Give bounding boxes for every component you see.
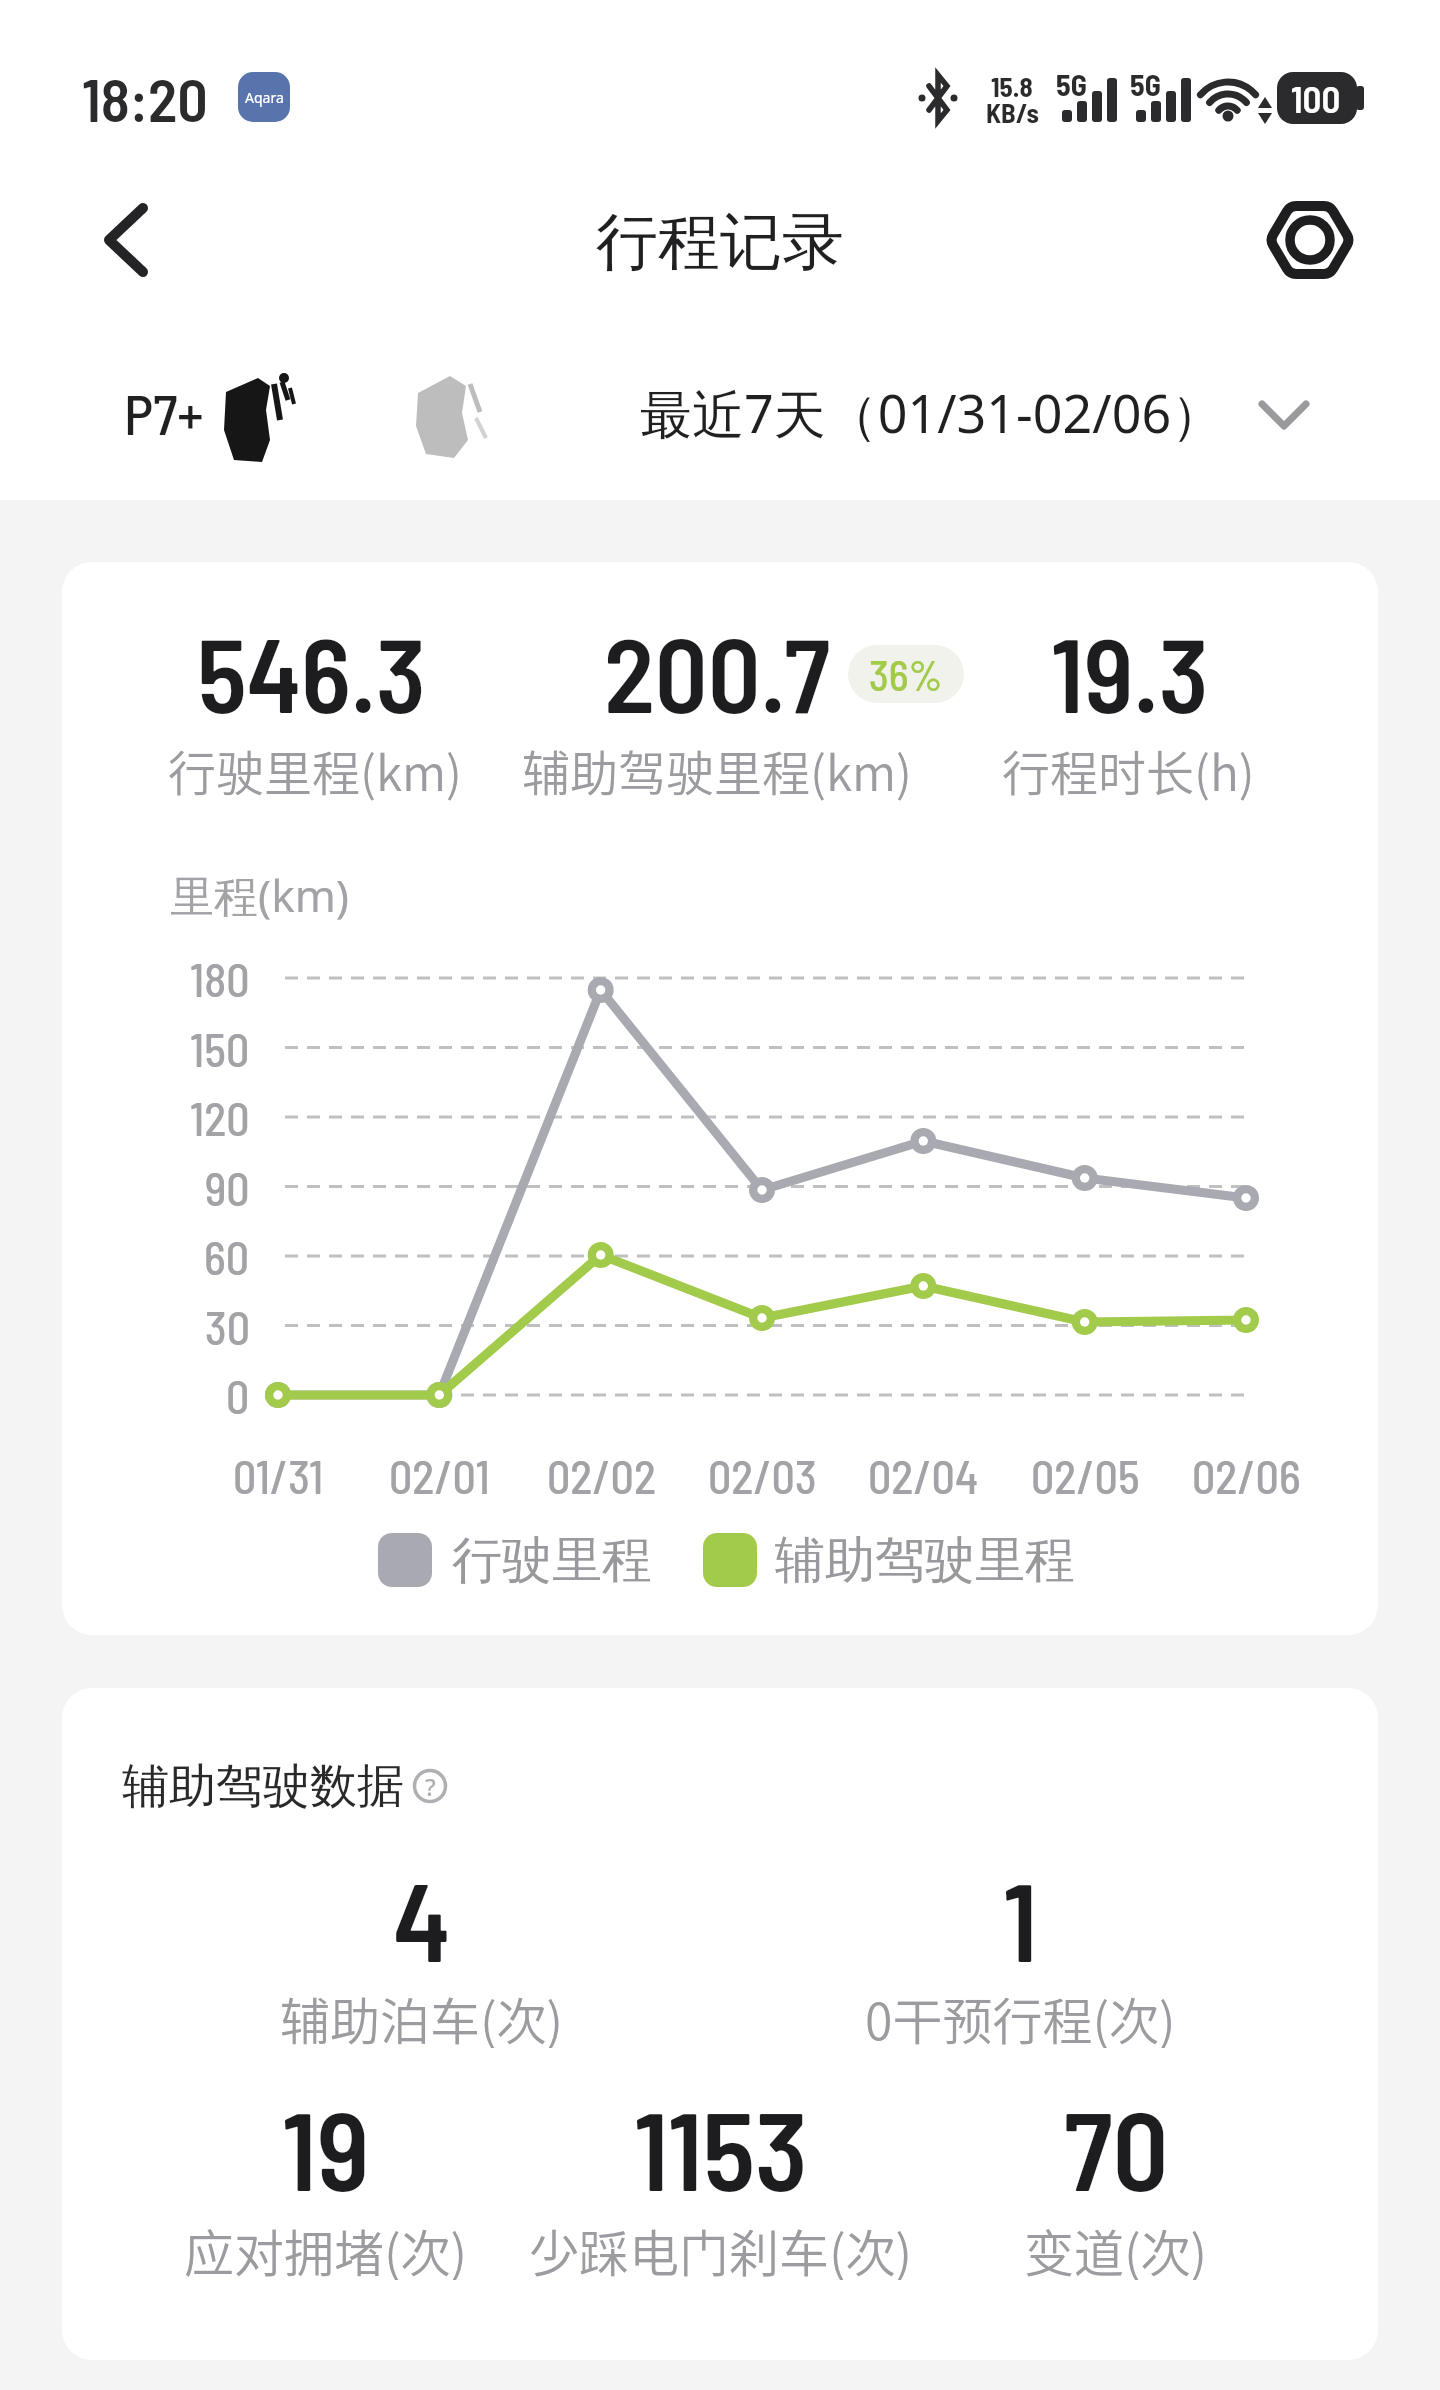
staticText: 里程(km) [170, 865, 350, 925]
staticText: KB/s [986, 96, 1039, 128]
staticText: 02/05 [1031, 1448, 1140, 1503]
staticText: 19.3 [1051, 609, 1209, 734]
staticText: 120 [190, 1090, 250, 1145]
staticText: 行程时长(h) [1002, 735, 1255, 805]
staticText: 60 [204, 1229, 250, 1284]
staticText: 0干预行程(次) [865, 1982, 1176, 2048]
staticText: 02/06 [1192, 1448, 1301, 1503]
staticText: 行驶里程 [452, 1529, 652, 1592]
button[interactable]: P7+ [0, 365, 1440, 465]
staticText: 行驶里程(km) [168, 735, 462, 805]
staticText: 18:20 [82, 62, 208, 132]
staticText: P7+ [124, 379, 204, 446]
staticText: 辅助驾驶数据 [122, 1757, 404, 1816]
staticText: 200.7 [604, 609, 830, 734]
staticText: 30 [205, 1299, 250, 1354]
staticText: 15.8 [991, 70, 1033, 102]
staticText: 最近7天（01/31-02/06） [640, 377, 1224, 447]
staticText: 辅助驾驶里程(km) [522, 735, 912, 805]
staticText: 少踩电门刹车(次) [529, 2214, 913, 2280]
staticText: 100 [1291, 76, 1341, 120]
staticText: 5G [1130, 66, 1161, 102]
staticText: 150 [190, 1021, 250, 1076]
staticText: 02/03 [708, 1448, 817, 1503]
staticText: 02/04 [868, 1448, 979, 1503]
staticText: ? [425, 1770, 436, 1803]
staticText: 02/02 [547, 1448, 656, 1503]
staticText: 辅助驾驶里程 [775, 1529, 1075, 1592]
staticText: 4 [393, 1852, 451, 1982]
staticText: 36% [869, 649, 943, 699]
staticText: 应对拥堵(次) [184, 2214, 468, 2280]
staticText: 1 [1003, 1852, 1038, 1982]
staticText: 02/01 [389, 1448, 490, 1503]
button[interactable]: ? [413, 1769, 447, 1803]
staticText: 70 [1064, 2081, 1169, 2211]
staticText: 0 [226, 1368, 250, 1423]
staticText: 辅助泊车(次) [280, 1982, 564, 2048]
button[interactable] [80, 190, 170, 290]
staticText: 19 [282, 2081, 370, 2211]
staticText: 行程记录 [596, 203, 844, 278]
staticText: 1153 [634, 2081, 808, 2211]
staticText: 546.3 [197, 609, 426, 734]
staticText: 变道(次) [1024, 2214, 1208, 2280]
staticText: 180 [190, 951, 250, 1006]
staticText: 5G [1056, 66, 1087, 102]
staticText: Aqara [245, 88, 284, 107]
button[interactable] [1256, 188, 1364, 292]
staticText: 90 [205, 1160, 250, 1215]
staticText: 01/31 [233, 1448, 324, 1503]
